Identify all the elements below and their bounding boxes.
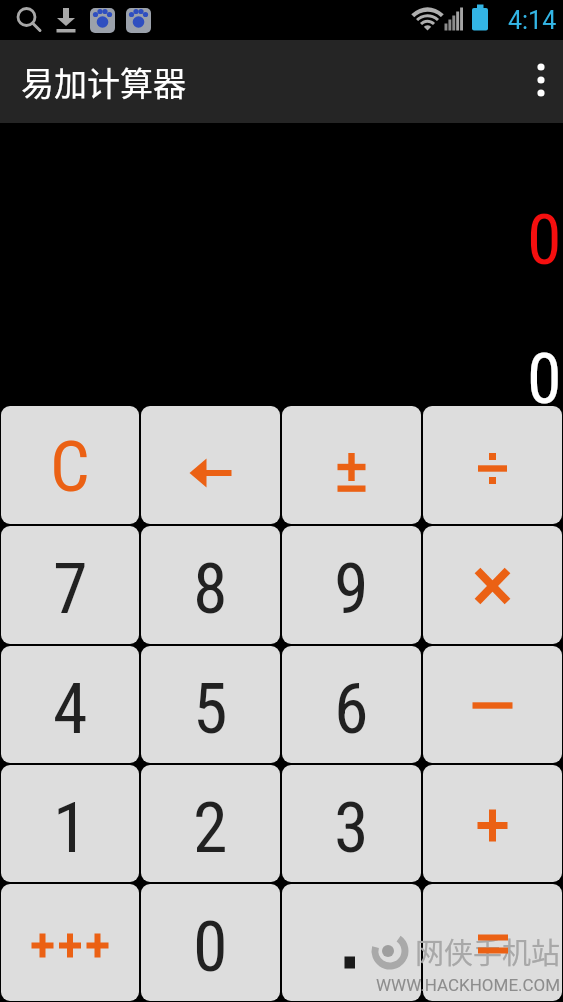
button[interactable] (423, 526, 562, 644)
button[interactable]: 3 (282, 765, 421, 882)
button[interactable]: 6 (282, 646, 421, 763)
staticText: 6 (334, 668, 369, 750)
staticText: 4:14 (508, 6, 557, 35)
staticText: 7 (53, 548, 88, 630)
button[interactable] (423, 646, 562, 763)
button[interactable] (282, 406, 421, 524)
staticText: C (50, 426, 90, 508)
button[interactable] (423, 884, 562, 1001)
staticText: 易加计算器 (21, 58, 186, 106)
staticText: 9 (334, 548, 369, 630)
button[interactable]: 2 (141, 765, 280, 882)
staticText: 3 (334, 787, 369, 869)
staticText: 4 (53, 668, 88, 750)
button[interactable]: C (1, 406, 139, 524)
button[interactable] (423, 765, 562, 882)
button[interactable]: 1 (1, 765, 139, 882)
staticText: 2 (193, 787, 228, 869)
button[interactable]: 8 (141, 526, 280, 644)
button[interactable] (1, 884, 139, 1001)
staticText: WWW.HACKHOME.COM (376, 975, 561, 995)
button[interactable] (423, 406, 562, 524)
staticText: 0 (527, 199, 562, 281)
button[interactable] (141, 406, 280, 524)
staticText: 1 (53, 787, 88, 869)
button[interactable] (282, 884, 421, 1001)
button[interactable]: 0 (141, 884, 280, 1001)
button[interactable] (519, 40, 563, 123)
staticText: 0 (193, 906, 228, 988)
button[interactable]: 4 (1, 646, 139, 763)
staticText: 5 (193, 668, 228, 750)
staticText: 网侠手机站 (415, 930, 561, 972)
staticText: 8 (193, 548, 228, 630)
button[interactable]: 7 (1, 526, 139, 644)
button[interactable]: 5 (141, 646, 280, 763)
button[interactable]: 9 (282, 526, 421, 644)
staticText: 0 (527, 338, 562, 420)
